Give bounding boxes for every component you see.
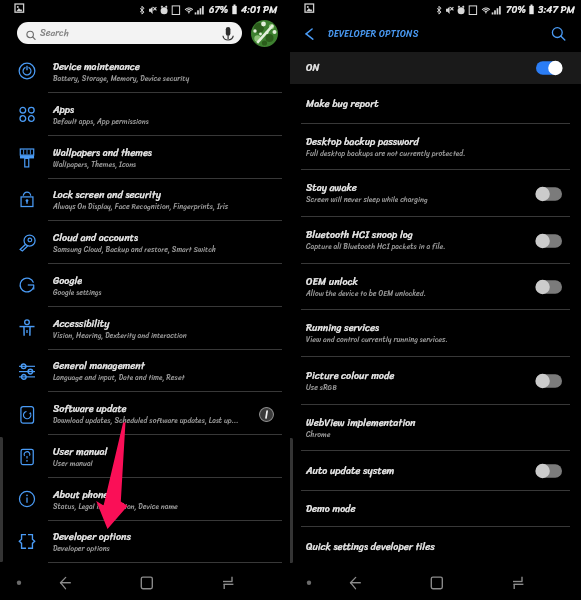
staticText: Always On Display, Face Recognition, Fin… xyxy=(53,200,229,213)
staticText: Wallpapers and themes xyxy=(53,144,152,162)
button[interactable]: Toggle xyxy=(534,233,564,249)
staticText: Cloud and accounts xyxy=(53,229,139,247)
button[interactable]: Back xyxy=(300,24,320,44)
staticText: General management xyxy=(53,357,145,375)
button[interactable]: Make bug report xyxy=(290,84,581,124)
button[interactable]: Running services xyxy=(290,310,581,357)
button[interactable]: WebView implementation xyxy=(290,405,581,451)
button[interactable]: Toggle xyxy=(534,279,564,295)
staticText: Samsung Cloud, Backup and restore, Smart… xyxy=(53,243,216,256)
staticText: Stay awake xyxy=(306,179,357,197)
staticText: 67% xyxy=(209,1,229,18)
staticText: Running services xyxy=(306,319,380,337)
staticText: WebView implementation xyxy=(306,414,416,432)
button[interactable]: Cloud and accounts xyxy=(0,221,290,264)
staticText: 3:47 PM xyxy=(538,1,575,18)
staticText: Demo mode xyxy=(306,500,356,518)
button[interactable]: Demo mode xyxy=(290,491,581,527)
staticText: Chrome xyxy=(306,428,331,441)
staticText: Lock screen and security xyxy=(53,186,162,204)
staticText: View and control currently running servi… xyxy=(306,333,448,346)
staticText: Language and input, Date and time, Reset xyxy=(53,371,185,384)
button[interactable]: Wallpapers and themes xyxy=(0,136,290,179)
staticText: 70% xyxy=(506,1,526,18)
staticText: Default apps, App permissions xyxy=(53,115,149,128)
button[interactable]: Stay awake xyxy=(290,170,581,217)
staticText: Developer options xyxy=(53,542,110,555)
button[interactable]: About phone xyxy=(0,478,290,521)
button[interactable]: Developer options xyxy=(0,520,290,563)
staticText: Full desktop backups are not currently p… xyxy=(306,147,466,160)
staticText: Download updates, Scheduled software upd… xyxy=(53,414,239,427)
button[interactable]: Info xyxy=(259,407,274,422)
button[interactable]: User manual xyxy=(0,435,290,478)
button[interactable]: Apps xyxy=(0,93,290,136)
staticText: Apps xyxy=(53,101,75,119)
staticText: Allow the device to be OEM unlocked. xyxy=(306,287,426,300)
staticText: DEVELOPER OPTIONS xyxy=(328,26,419,42)
button[interactable]: Picture colour mode xyxy=(290,357,581,405)
staticText: Google xyxy=(53,272,83,290)
staticText: Vision, Hearing, Dexterity and interacti… xyxy=(53,329,187,342)
staticText: User manual xyxy=(53,443,108,461)
staticText: 4:01 PM xyxy=(241,1,278,18)
button[interactable]: ON xyxy=(290,52,581,84)
button[interactable]: Toggle xyxy=(534,463,564,479)
staticText: ON xyxy=(306,59,320,77)
button[interactable]: Profile xyxy=(251,20,278,47)
staticText: Wallpapers, Themes, Icons xyxy=(53,158,137,171)
staticText: Auto update system xyxy=(306,462,395,480)
button[interactable]: Quick settings developer tiles xyxy=(290,527,581,568)
staticText: OEM unlock xyxy=(306,273,358,291)
staticText: Screen will never sleep while charging xyxy=(306,193,428,206)
staticText: Developer options xyxy=(53,528,132,546)
staticText: Google settings xyxy=(53,286,102,299)
button[interactable]: Device maintenance xyxy=(0,50,290,93)
staticText: Desktop backup password xyxy=(306,133,419,151)
button[interactable]: Auto update system xyxy=(290,451,581,491)
staticText: Search xyxy=(40,25,69,41)
button[interactable]: Search xyxy=(547,23,567,43)
staticText: Software update xyxy=(53,400,127,418)
button[interactable]: OEM unlock xyxy=(290,264,581,310)
button[interactable]: Software update xyxy=(0,392,290,435)
button[interactable]: Bluetooth HCI snoop log xyxy=(290,217,581,264)
button[interactable]: General management xyxy=(0,349,290,392)
staticText: Accessibility xyxy=(53,315,110,333)
button[interactable]: Desktop backup password xyxy=(290,124,581,170)
staticText: Bluetooth HCI snoop log xyxy=(306,226,413,244)
staticText: Capture all Bluetooth HCI packets in a f… xyxy=(306,240,446,253)
button[interactable]: Google xyxy=(0,264,290,307)
staticText: Device maintenance xyxy=(53,58,140,76)
button[interactable]: Accessibility xyxy=(0,307,290,350)
staticText: Status, Legal information, Device name xyxy=(53,500,178,513)
button[interactable]: Toggle xyxy=(534,373,564,389)
staticText: Quick settings developer tiles xyxy=(306,538,435,556)
staticText: About phone xyxy=(53,486,109,504)
button[interactable]: Toggle xyxy=(534,186,564,202)
staticText: Make bug report xyxy=(306,95,379,113)
staticText: Battery, Storage, Memory, Device securit… xyxy=(53,72,190,85)
staticText: Picture colour mode xyxy=(306,367,395,385)
button[interactable]: Toggle xyxy=(534,60,564,76)
staticText: Use sRGB xyxy=(306,381,337,394)
button[interactable]: Search xyxy=(17,22,242,44)
staticText: User manual xyxy=(53,457,93,470)
button[interactable]: Lock screen and security xyxy=(0,178,290,221)
